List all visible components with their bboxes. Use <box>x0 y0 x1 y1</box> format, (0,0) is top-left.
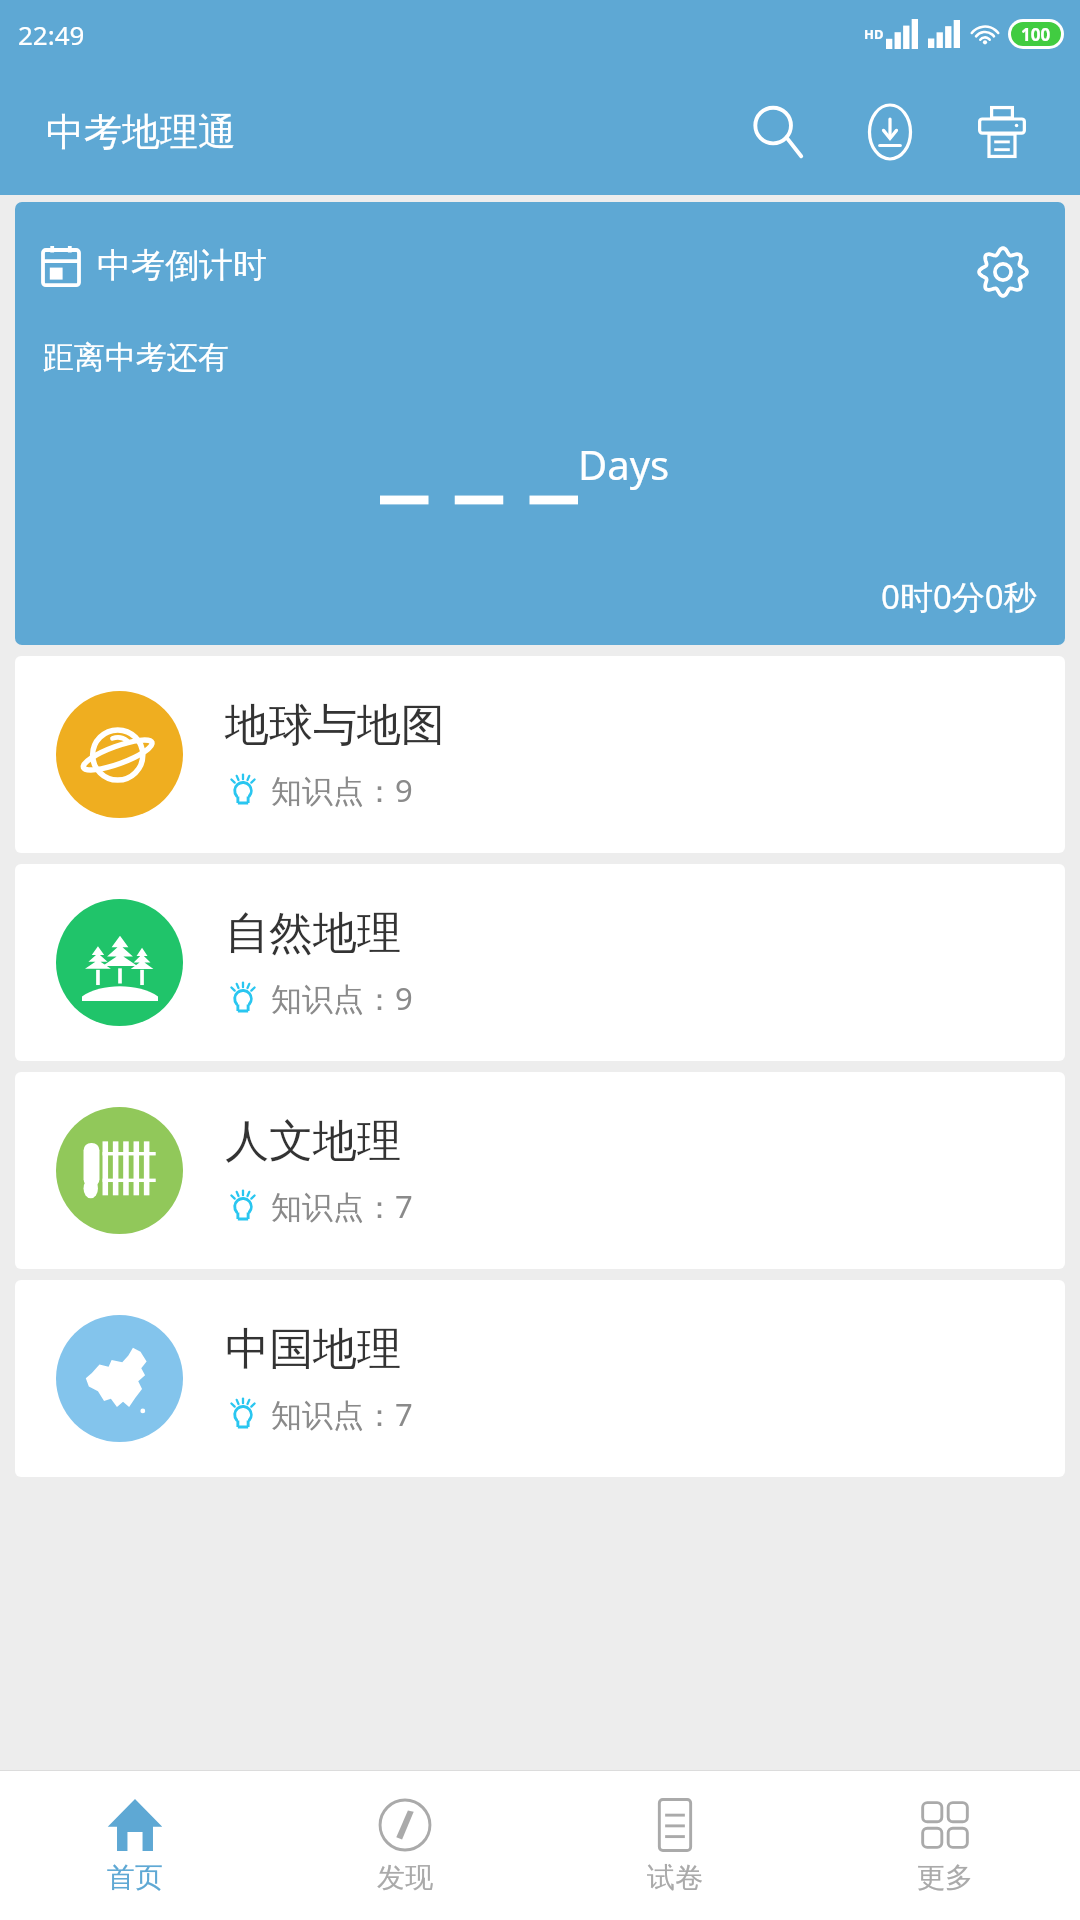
button[interactable]: 中国地理 <box>15 1280 1065 1477</box>
button[interactable]: Settings <box>967 236 1039 308</box>
button[interactable]: 中考倒计时 <box>15 202 1065 645</box>
staticText: 首页 <box>107 1860 163 1895</box>
staticText: 中考地理通 <box>46 108 236 156</box>
button[interactable]: 人文地理 <box>15 1072 1065 1269</box>
staticText: 更多 <box>917 1860 973 1895</box>
staticText: 试卷 <box>647 1860 703 1895</box>
staticText: 知识点：9 <box>271 769 413 811</box>
staticText: 22:49 <box>18 17 85 52</box>
button[interactable]: 首页 <box>0 1771 270 1920</box>
button[interactable]: 更多 <box>810 1771 1080 1920</box>
staticText: 中考倒计时 <box>97 244 267 287</box>
button[interactable]: 发现 <box>270 1771 540 1920</box>
staticText: Days <box>578 437 670 491</box>
staticText: 100 <box>1021 23 1051 46</box>
staticText: 自然地理 <box>225 906 401 961</box>
button[interactable]: Print <box>946 76 1058 188</box>
staticText: HD <box>864 25 884 43</box>
button[interactable]: Download <box>834 76 946 188</box>
staticText: 中国地理 <box>225 1322 401 1377</box>
staticText: 知识点：7 <box>271 1185 413 1227</box>
staticText: 发现 <box>377 1860 433 1895</box>
staticText: 0时0分0秒 <box>881 574 1037 619</box>
staticText: 距离中考还有 <box>43 338 229 377</box>
staticText: 知识点：9 <box>271 977 413 1019</box>
staticText: 知识点：7 <box>271 1393 413 1435</box>
button[interactable]: 试卷 <box>540 1771 810 1920</box>
button[interactable]: 自然地理 <box>15 864 1065 1061</box>
staticText: 地球与地图 <box>225 698 445 753</box>
staticText: 人文地理 <box>225 1114 401 1169</box>
button[interactable]: Search <box>722 76 834 188</box>
button[interactable]: 地球与地图 <box>15 656 1065 853</box>
